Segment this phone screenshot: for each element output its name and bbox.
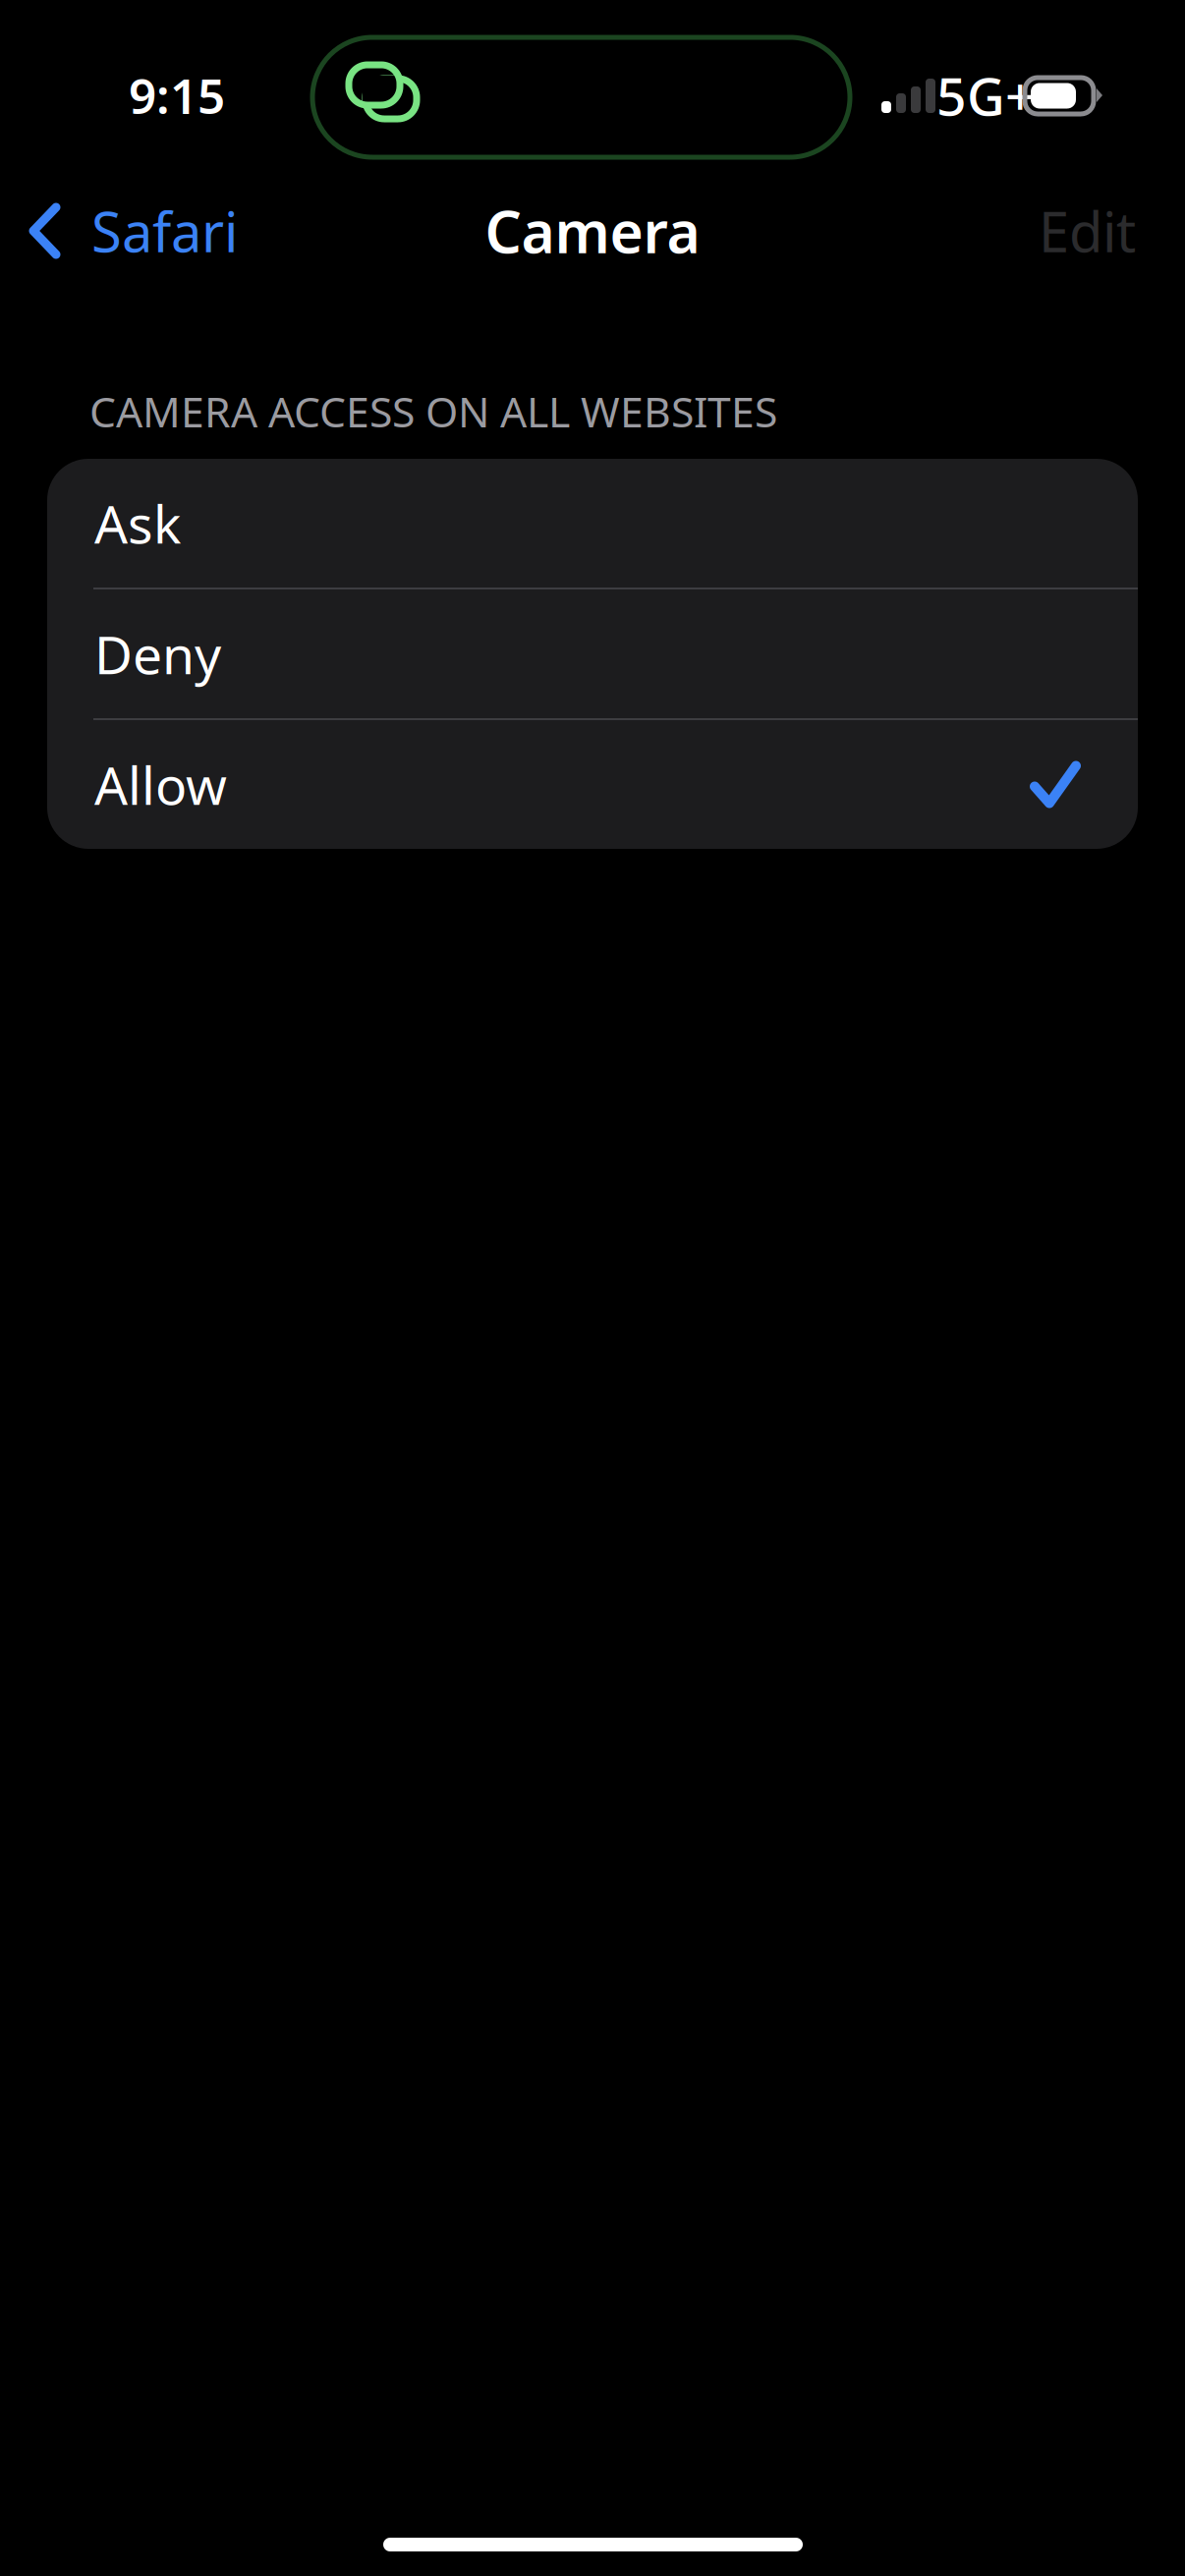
button[interactable]: Deny bbox=[47, 589, 1138, 718]
staticText: 9:15 bbox=[129, 63, 225, 127]
staticText: Ask bbox=[94, 488, 181, 558]
staticText: Edit bbox=[1039, 194, 1136, 267]
button[interactable]: Edit bbox=[1015, 177, 1159, 285]
staticText: 5G+ bbox=[936, 61, 1036, 130]
button[interactable]: Allow bbox=[47, 720, 1138, 849]
staticText: Allow bbox=[94, 750, 227, 819]
staticText: Camera bbox=[485, 193, 700, 269]
staticText: CAMERA ACCESS ON ALL WEBSITES bbox=[89, 383, 777, 439]
button[interactable]: Safari bbox=[0, 177, 255, 285]
staticText: Safari bbox=[91, 194, 238, 267]
staticText: Deny bbox=[94, 619, 221, 689]
button[interactable]: Ask bbox=[47, 459, 1138, 588]
